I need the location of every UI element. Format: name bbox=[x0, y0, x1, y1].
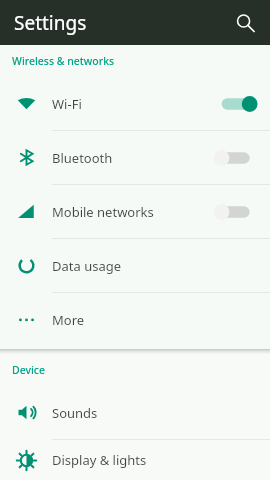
button[interactable]: Mobile networks off bbox=[218, 201, 254, 223]
staticText: Wireless & networks bbox=[12, 54, 115, 68]
button[interactable]: Wi-Fi bbox=[0, 77, 270, 130]
staticText: Mobile networks bbox=[52, 203, 154, 221]
button[interactable]: Display & lights bbox=[0, 440, 270, 480]
button[interactable]: More bbox=[0, 293, 270, 346]
staticText: Sounds bbox=[52, 404, 98, 422]
staticText: Device bbox=[12, 363, 46, 377]
button[interactable]: Search bbox=[227, 5, 263, 41]
staticText: More bbox=[52, 311, 85, 329]
staticText: Wi-Fi bbox=[52, 95, 82, 113]
button[interactable]: Data usage bbox=[0, 239, 270, 292]
button[interactable]: Wi-Fi on bbox=[218, 93, 254, 115]
button[interactable]: Bluetooth bbox=[0, 131, 270, 184]
staticText: Settings bbox=[14, 10, 87, 36]
staticText: Display & lights bbox=[52, 451, 147, 469]
staticText: Data usage bbox=[52, 257, 122, 275]
staticText: Bluetooth bbox=[52, 149, 113, 167]
button[interactable]: Mobile networks bbox=[0, 185, 270, 238]
button[interactable]: Bluetooth off bbox=[218, 147, 254, 169]
button[interactable]: Sounds bbox=[0, 386, 270, 439]
